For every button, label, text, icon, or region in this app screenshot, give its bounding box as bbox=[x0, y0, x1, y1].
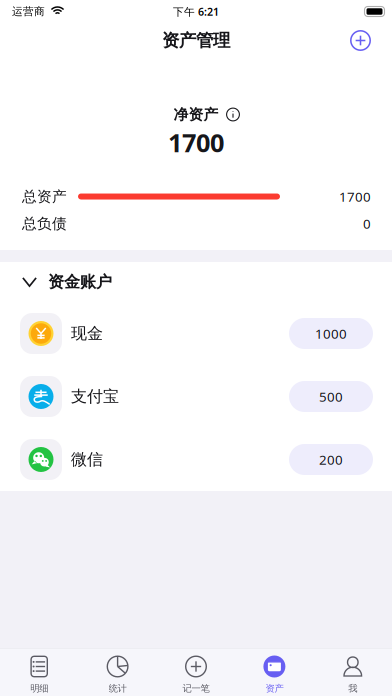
staticText: 总资产 bbox=[22, 187, 67, 205]
staticText: 总负债 bbox=[22, 214, 67, 232]
button[interactable]: 我 bbox=[314, 648, 392, 694]
staticText: 支付宝 bbox=[71, 387, 119, 406]
staticText: 明细 bbox=[30, 683, 48, 694]
button[interactable]: 资产 bbox=[235, 648, 314, 694]
button[interactable]: 新增账户 bbox=[339, 20, 381, 60]
staticText: 净资产 bbox=[173, 105, 218, 123]
staticText: 统计 bbox=[109, 683, 127, 694]
staticText: 0 bbox=[363, 215, 371, 232]
staticText: 记一笔 bbox=[182, 683, 209, 694]
button[interactable]: 记一笔 bbox=[157, 648, 235, 694]
staticText: 资金账户 bbox=[48, 272, 112, 292]
button[interactable]: 资金账户 bbox=[0, 262, 392, 302]
staticText: 200 bbox=[319, 451, 343, 468]
button[interactable]: 净资产说明 bbox=[226, 107, 240, 121]
button[interactable]: 现金 bbox=[0, 302, 392, 365]
button[interactable]: 统计 bbox=[78, 648, 157, 694]
staticText: 我 bbox=[348, 683, 357, 694]
staticText: 资产管理 bbox=[162, 30, 230, 51]
staticText: 1700 bbox=[168, 126, 224, 159]
staticText: 运营商 bbox=[12, 5, 45, 18]
staticText: 资产 bbox=[265, 683, 283, 694]
staticText: 1000 bbox=[315, 325, 347, 342]
staticText: 现金 bbox=[71, 324, 103, 343]
staticText: 微信 bbox=[71, 450, 103, 469]
staticText: 1700 bbox=[339, 188, 371, 205]
button[interactable]: 微信 bbox=[0, 428, 392, 491]
staticText: 500 bbox=[319, 388, 343, 405]
button[interactable]: 支付宝 bbox=[0, 365, 392, 428]
button[interactable]: 明细 bbox=[0, 648, 78, 694]
staticText: 下午 6:21 bbox=[173, 4, 219, 19]
